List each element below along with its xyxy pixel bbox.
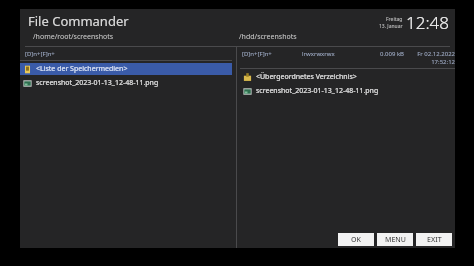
staticText: screenshot_2023-01-13_12-48-11.png [256,86,379,96]
button[interactable]: OK [338,233,374,246]
staticText: 13. Januar [379,23,403,30]
staticText: [D]n+[F]n+ [242,50,302,58]
staticText: Freitag [386,16,403,23]
staticText: /home/root/screenshots [33,32,237,42]
button[interactable]: <Übergeordnetes Verzeichnis> [240,71,455,83]
staticText: EXIT [427,235,442,245]
staticText: 12:48 [406,11,449,34]
staticText: <Liste der Speichermedien> [36,64,128,74]
staticText: MENU [385,235,406,245]
button[interactable]: EXIT [416,233,452,246]
staticText: lrwxrwxrwx [302,50,348,58]
staticText: File Commander [28,12,129,30]
button[interactable]: screenshot_2023-01-13_12-48-11.png [20,77,232,89]
staticText: Fr 02.12.2022 17:52:12 [404,50,455,66]
button[interactable]: screenshot_2023-01-13_12-48-11.png [240,85,455,97]
staticText: <Übergeordnetes Verzeichnis> [256,72,357,82]
button[interactable]: <Liste der Speichermedien> [20,63,232,75]
staticText: OK [351,235,361,245]
button[interactable]: MENU [377,233,413,246]
staticText: 0.009 kB [348,50,404,58]
staticText: /hdd/screenshots [239,32,297,42]
staticText: [D]n+[F]n+ [25,50,55,58]
staticText: screenshot_2023-01-13_12-48-11.png [36,78,159,88]
